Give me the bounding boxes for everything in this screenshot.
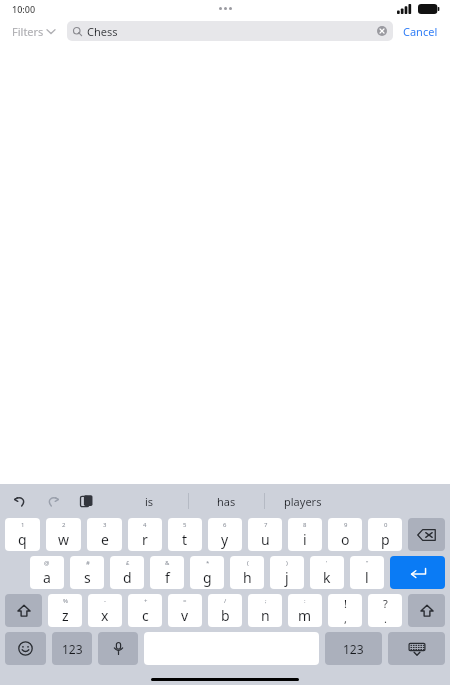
staticText: 7 bbox=[264, 521, 268, 529]
button[interactable]: " bbox=[350, 556, 384, 589]
button[interactable]: - bbox=[88, 594, 122, 627]
staticText: ; bbox=[265, 597, 267, 605]
button[interactable]: is bbox=[110, 488, 188, 514]
staticText: n bbox=[261, 606, 270, 625]
staticText: c bbox=[142, 606, 149, 625]
button[interactable]: * bbox=[190, 556, 224, 589]
button[interactable]: Chess bbox=[67, 21, 393, 41]
staticText: p bbox=[381, 530, 390, 549]
staticText: k bbox=[323, 568, 331, 587]
button[interactable]: Shift bbox=[5, 594, 42, 627]
staticText: / bbox=[224, 597, 227, 605]
button[interactable]: ) bbox=[270, 556, 304, 589]
button[interactable]: 123 bbox=[325, 632, 382, 665]
staticText: b bbox=[221, 606, 230, 625]
staticText: r bbox=[142, 530, 148, 549]
button[interactable]: 2 bbox=[46, 518, 81, 551]
button[interactable]: Return bbox=[390, 556, 445, 589]
button[interactable]: % bbox=[48, 594, 82, 627]
staticText: - bbox=[104, 597, 106, 605]
staticText: = bbox=[183, 597, 187, 605]
button[interactable]: 7 bbox=[248, 518, 282, 551]
staticText: w bbox=[58, 530, 70, 549]
button[interactable]: Hide keyboard bbox=[388, 632, 445, 665]
staticText: x bbox=[101, 606, 109, 625]
staticText: is bbox=[145, 494, 154, 509]
button[interactable]: 4 bbox=[128, 518, 162, 551]
button[interactable]: ! bbox=[328, 594, 362, 627]
staticText: " bbox=[366, 559, 369, 567]
staticText: @ bbox=[44, 559, 50, 567]
button[interactable]: ; bbox=[248, 594, 282, 627]
staticText: Cancel bbox=[403, 24, 438, 39]
staticText: q bbox=[18, 530, 27, 549]
button[interactable]: Backspace bbox=[408, 518, 445, 551]
button[interactable]: Emoji bbox=[5, 632, 46, 665]
button[interactable]: @ bbox=[30, 556, 64, 589]
staticText: t bbox=[182, 530, 188, 549]
button[interactable]: Filters bbox=[10, 24, 57, 39]
staticText: g bbox=[203, 568, 212, 587]
button[interactable]: Redo bbox=[43, 491, 63, 511]
staticText: e bbox=[101, 530, 109, 549]
button[interactable]: 6 bbox=[208, 518, 242, 551]
staticText: 3 bbox=[103, 521, 107, 529]
button[interactable]: + bbox=[128, 594, 162, 627]
staticText: m bbox=[298, 606, 312, 625]
staticText: i bbox=[303, 530, 307, 549]
button[interactable]: & bbox=[150, 556, 184, 589]
button[interactable]: 5 bbox=[168, 518, 202, 551]
staticText: j bbox=[285, 568, 289, 587]
staticText: f bbox=[165, 568, 170, 587]
button[interactable]: : bbox=[288, 594, 322, 627]
button[interactable]: Cancel bbox=[401, 22, 440, 41]
staticText: , bbox=[344, 611, 347, 626]
button[interactable]: # bbox=[70, 556, 104, 589]
button[interactable]: has bbox=[189, 488, 264, 514]
staticText: ' bbox=[326, 559, 328, 567]
button[interactable]: Clear text bbox=[377, 26, 387, 36]
staticText: 5 bbox=[183, 521, 187, 529]
staticText: 8 bbox=[303, 521, 307, 529]
staticText: Filters bbox=[12, 24, 44, 39]
button[interactable]: Dictate bbox=[98, 632, 138, 665]
button[interactable]: 1 bbox=[5, 518, 40, 551]
staticText: ( bbox=[247, 559, 249, 567]
button[interactable]: 0 bbox=[368, 518, 402, 551]
staticText: ? bbox=[383, 596, 388, 611]
staticText: h bbox=[243, 568, 252, 587]
staticText: # bbox=[86, 559, 90, 567]
button[interactable]: 8 bbox=[288, 518, 322, 551]
staticText: % bbox=[63, 597, 68, 605]
staticText: ) bbox=[286, 559, 288, 567]
staticText: y bbox=[221, 530, 229, 549]
button[interactable]: ' bbox=[310, 556, 344, 589]
staticText: 123 bbox=[343, 641, 364, 657]
button[interactable]: Undo bbox=[10, 491, 30, 511]
staticText: * bbox=[206, 559, 210, 567]
button[interactable]: 123 bbox=[52, 632, 92, 665]
button[interactable]: Paste bbox=[76, 491, 96, 511]
button[interactable]: players bbox=[265, 488, 340, 514]
button[interactable]: £ bbox=[110, 556, 144, 589]
button[interactable]: Shift bbox=[408, 594, 445, 627]
staticText: : bbox=[304, 597, 306, 605]
button[interactable]: 3 bbox=[87, 518, 122, 551]
staticText: & bbox=[165, 559, 170, 567]
staticText: 2 bbox=[62, 521, 66, 529]
staticText: v bbox=[181, 606, 189, 625]
staticText: a bbox=[43, 568, 51, 587]
staticText: has bbox=[217, 494, 236, 509]
button[interactable]: / bbox=[208, 594, 242, 627]
staticText: 9 bbox=[344, 521, 348, 529]
staticText: . bbox=[384, 611, 387, 626]
button[interactable]: ? bbox=[368, 594, 402, 627]
button[interactable]: 9 bbox=[328, 518, 362, 551]
button[interactable]: = bbox=[168, 594, 202, 627]
staticText: z bbox=[62, 606, 69, 625]
staticText: o bbox=[341, 530, 350, 549]
staticText: £ bbox=[126, 559, 130, 567]
staticText: Chess bbox=[87, 24, 118, 39]
button[interactable]: ( bbox=[230, 556, 264, 589]
